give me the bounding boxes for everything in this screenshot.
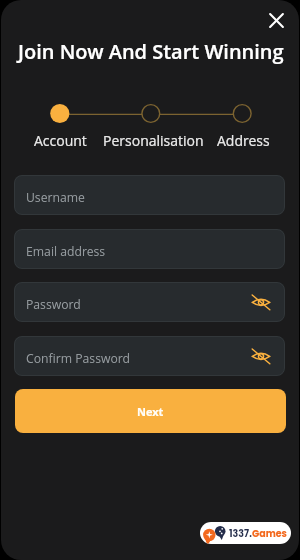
button[interactable]: Show password bbox=[249, 344, 273, 368]
button[interactable]: Email address bbox=[14, 229, 285, 269]
staticText: Next bbox=[137, 404, 164, 419]
staticText: Account bbox=[34, 131, 87, 150]
button[interactable]: Password bbox=[14, 282, 285, 322]
button[interactable]: Username bbox=[14, 175, 285, 215]
button[interactable]: Confirm Password bbox=[14, 336, 285, 376]
button[interactable]: Next bbox=[15, 389, 286, 433]
staticText: Games bbox=[252, 527, 287, 540]
staticText: Password bbox=[26, 296, 81, 313]
staticText: Personalisation bbox=[103, 131, 204, 150]
button[interactable]: Account bbox=[1, 130, 120, 150]
button[interactable]: Close bbox=[263, 7, 290, 34]
button[interactable]: 1337.Games bbox=[200, 522, 291, 544]
staticText: Email address bbox=[26, 243, 106, 260]
staticText: Username bbox=[26, 189, 85, 206]
staticText: 1337. bbox=[229, 527, 252, 540]
button[interactable]: Address bbox=[183, 130, 299, 150]
staticText: Address bbox=[217, 131, 270, 150]
staticText: Join Now And Start Winning bbox=[18, 38, 284, 65]
staticText: Confirm Password bbox=[26, 350, 131, 367]
button[interactable]: Show password bbox=[249, 290, 273, 314]
button[interactable]: Personalisation bbox=[93, 130, 213, 150]
